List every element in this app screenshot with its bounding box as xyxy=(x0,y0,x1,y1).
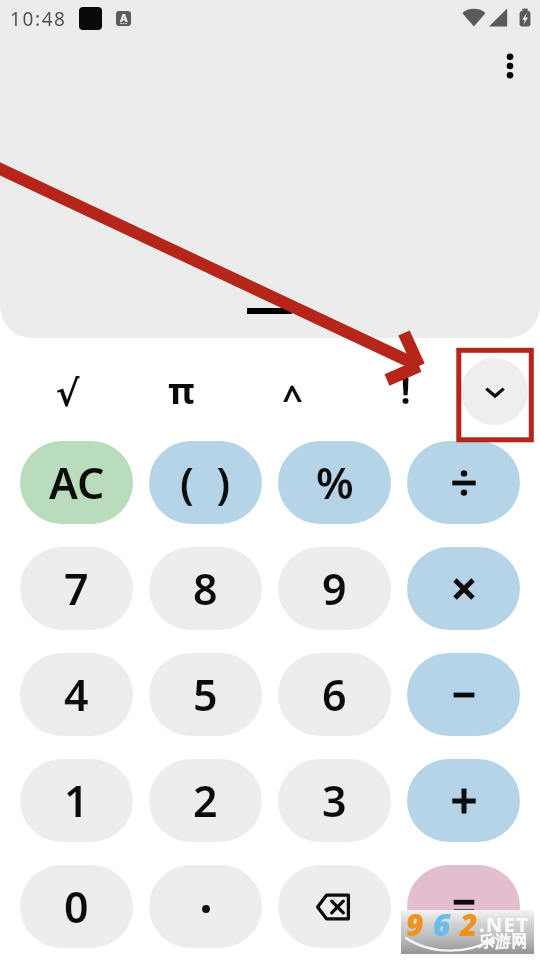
staticText: 9 xyxy=(322,559,347,618)
staticText: ( ) xyxy=(180,453,231,512)
staticText: 8 xyxy=(193,559,218,618)
staticText: 3 xyxy=(322,771,347,830)
button[interactable]: Collapse keypad xyxy=(461,358,528,425)
button[interactable]: Divide xyxy=(407,441,520,524)
button[interactable]: ( ) xyxy=(149,441,262,524)
staticText: 乐游网 xyxy=(478,932,528,952)
staticText: π xyxy=(168,366,195,415)
staticText: 2 xyxy=(193,771,218,830)
staticText: 9 xyxy=(406,904,433,945)
button[interactable]: 8 xyxy=(149,547,262,630)
staticText: .NET xyxy=(479,911,530,938)
staticText: 6 xyxy=(322,665,347,724)
staticText: 10:48 xyxy=(10,6,67,32)
button[interactable]: AC xyxy=(20,441,133,524)
staticText: AC xyxy=(49,453,105,512)
button[interactable]: More options xyxy=(486,42,534,90)
button[interactable]: π xyxy=(139,348,223,432)
staticText: ! xyxy=(400,366,411,415)
button[interactable]: 7 xyxy=(20,547,133,630)
staticText: 0 xyxy=(64,877,89,936)
button[interactable]: ! xyxy=(363,348,447,432)
button[interactable]: 1 xyxy=(20,759,133,842)
staticText: √ xyxy=(55,373,80,415)
button[interactable]: Subtract xyxy=(407,653,520,736)
staticText: 2 xyxy=(460,904,487,945)
staticText: ^ xyxy=(282,373,303,422)
button[interactable]: Decimal point xyxy=(149,865,262,948)
button[interactable]: √ xyxy=(25,352,109,436)
button[interactable]: % xyxy=(278,441,391,524)
button[interactable]: Add xyxy=(407,759,520,842)
button[interactable]: 9 xyxy=(278,547,391,630)
button[interactable]: 5 xyxy=(149,653,262,736)
staticText: A xyxy=(120,11,128,25)
button[interactable]: 2 xyxy=(149,759,262,842)
button[interactable]: 4 xyxy=(20,653,133,736)
staticText: 7 xyxy=(64,559,89,618)
staticText: 6 xyxy=(433,904,460,945)
button[interactable]: Backspace xyxy=(278,865,391,948)
staticText: % xyxy=(316,453,354,512)
button[interactable]: 0 xyxy=(20,865,133,948)
button[interactable]: 6 xyxy=(278,653,391,736)
button[interactable]: Multiply xyxy=(407,547,520,630)
staticText: 5 xyxy=(193,665,218,724)
staticText: 1 xyxy=(64,771,89,830)
staticText: 4 xyxy=(64,665,89,724)
button[interactable]: ^ xyxy=(250,355,334,439)
button[interactable]: Equals xyxy=(407,865,520,948)
button[interactable]: 3 xyxy=(278,759,391,842)
